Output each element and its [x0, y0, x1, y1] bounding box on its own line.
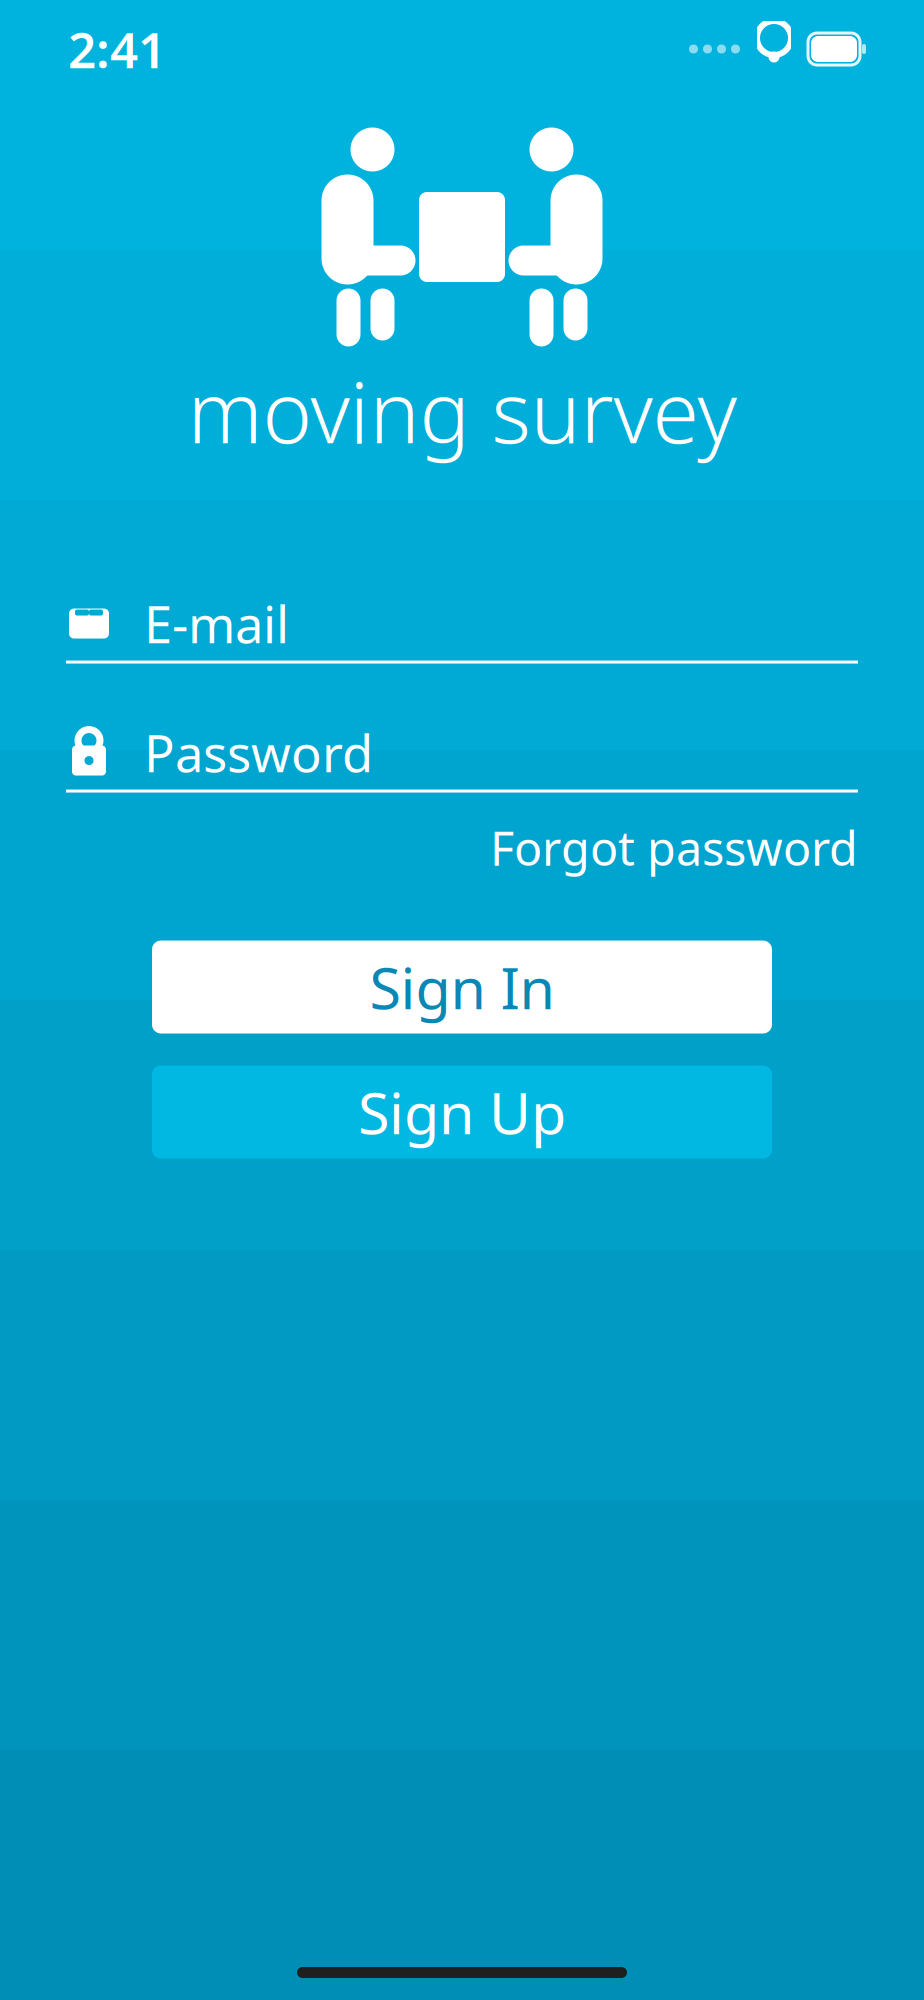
- button[interactable]: E-mail: [66, 562, 858, 663]
- staticText: Sign In: [369, 949, 554, 1025]
- staticText: Forgot password: [490, 816, 858, 878]
- staticText: moving survey: [187, 355, 736, 466]
- button[interactable]: Sign In: [152, 940, 772, 1033]
- staticText: Sign Up: [358, 1074, 566, 1150]
- button[interactable]: Password: [66, 691, 858, 792]
- staticText: 2:41: [68, 16, 166, 82]
- staticText: E-mail: [144, 590, 289, 657]
- staticText: Password: [144, 719, 373, 786]
- button[interactable]: Forgot password: [490, 806, 858, 888]
- button[interactable]: Sign Up: [152, 1065, 772, 1158]
